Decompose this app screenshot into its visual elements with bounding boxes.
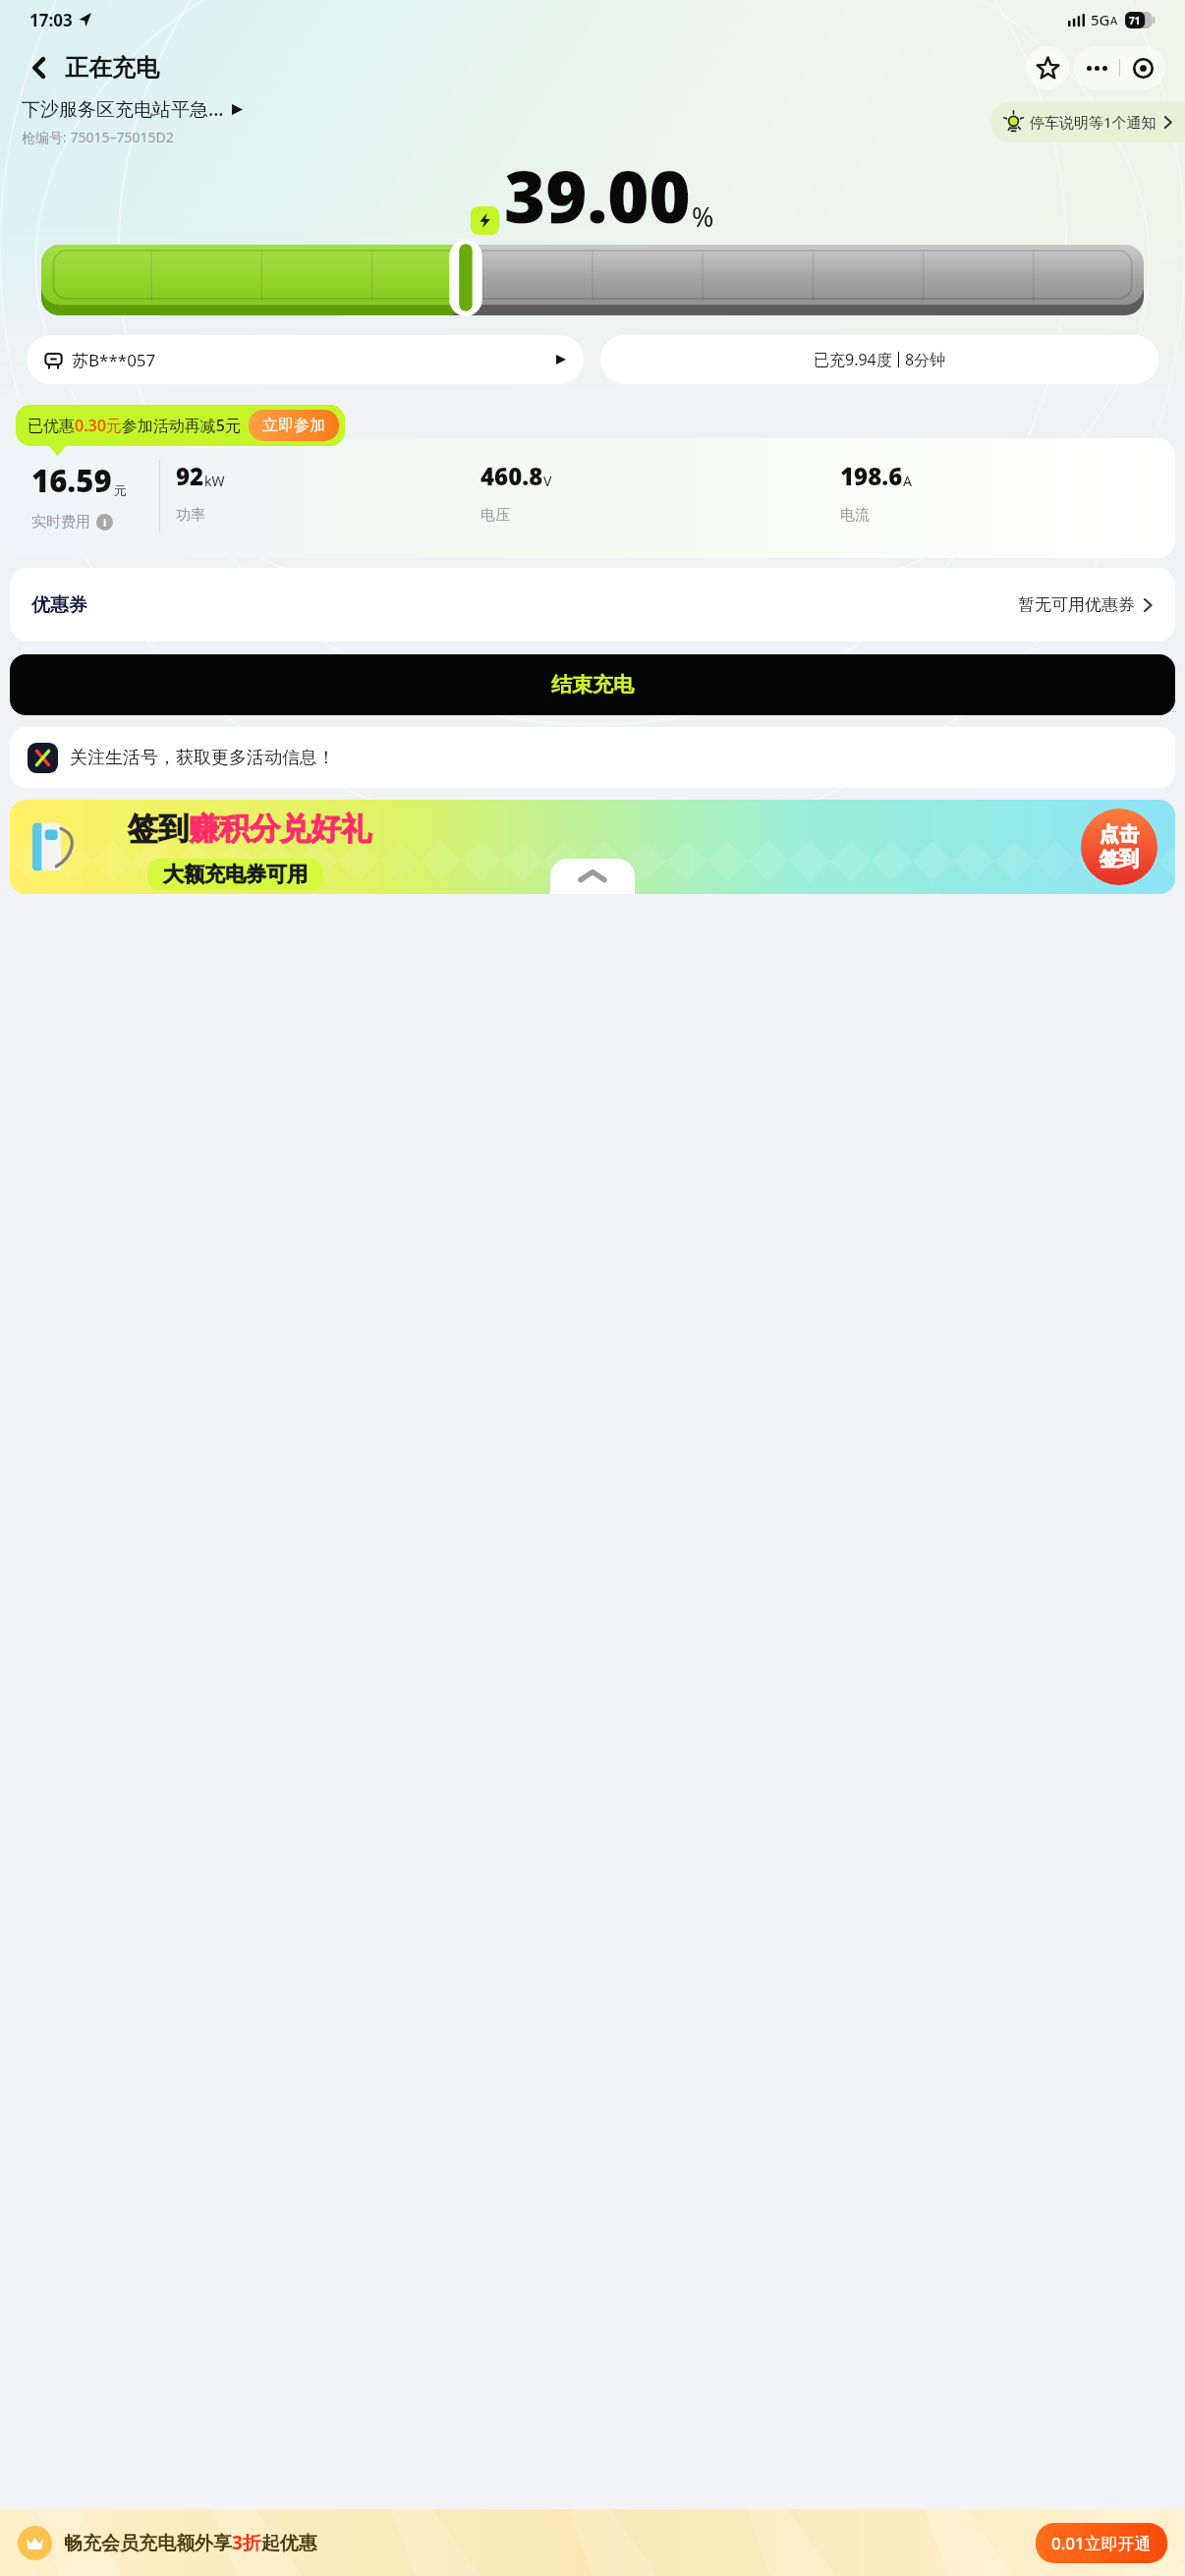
staticText: 签到: [128, 810, 189, 848]
button[interactable]: Expand: [550, 859, 635, 894]
staticText: 功率: [176, 506, 205, 525]
button[interactable]: 关注生活号，获取更多活动信息！: [10, 727, 1175, 788]
staticText: 暂无可用优惠券: [1018, 594, 1135, 615]
staticText: 198.6: [840, 460, 903, 492]
staticText: 关注生活号，获取更多活动信息！: [70, 747, 335, 769]
staticText: 已充9.94度: [814, 349, 892, 370]
staticText: 苏B***057: [72, 349, 156, 371]
staticText: 优惠券: [31, 593, 87, 617]
staticText: 枪编号: 75015–75015D2: [22, 128, 174, 146]
staticText: 正在充电: [65, 53, 159, 83]
staticText: kW: [204, 472, 225, 490]
staticText: 0.01立即开通: [1051, 2532, 1152, 2554]
button[interactable]: 点击: [1081, 809, 1157, 885]
button[interactable]: 已优惠0.30元参加活动再减5元: [16, 405, 345, 446]
button[interactable]: Fee info: [96, 514, 113, 531]
staticText: 结束充电: [551, 672, 634, 698]
staticText: %: [692, 198, 714, 235]
button[interactable]: 立即参加: [249, 410, 339, 441]
staticText: A: [1110, 13, 1118, 28]
button[interactable]: 优惠券: [10, 568, 1175, 642]
staticText: 停车说明等1个通知: [1030, 112, 1157, 132]
staticText: V: [543, 472, 552, 490]
button[interactable]: 下沙服务区充电站平急...: [22, 96, 990, 146]
staticText: 71: [1129, 14, 1141, 28]
button[interactable]: Back: [20, 48, 59, 87]
staticText: 8分钟: [905, 349, 946, 370]
button[interactable]: 签到: [10, 800, 1175, 894]
staticText: i: [103, 515, 107, 530]
staticText: 460.8: [480, 460, 543, 492]
staticText: 元: [114, 482, 127, 498]
staticText: 立即参加: [262, 416, 325, 435]
button[interactable]: More options: [1074, 46, 1119, 89]
staticText: 电流: [840, 506, 870, 525]
staticText: 大额充电券可用: [163, 862, 308, 887]
staticText: 17:03: [29, 9, 73, 31]
staticText: 赚积分兑好礼: [189, 810, 371, 848]
staticText: 点击: [1100, 822, 1139, 847]
staticText: 16.59: [31, 460, 112, 501]
button[interactable]: 苏B***057: [27, 335, 584, 384]
button[interactable]: 已充9.94度: [600, 335, 1158, 384]
staticText: 签到: [1100, 847, 1139, 871]
staticText: 电压: [480, 506, 510, 525]
staticText: 5G: [1091, 10, 1110, 29]
button[interactable]: 0.01立即开通: [1036, 2523, 1167, 2563]
staticText: 92: [176, 460, 204, 492]
staticText: 已优惠0.30元参加活动再减5元: [28, 415, 241, 436]
staticText: 实时费用: [31, 513, 90, 532]
button[interactable]: 结束充电: [10, 654, 1175, 715]
staticText: A: [903, 472, 912, 490]
staticText: 下沙服务区充电站平急...: [22, 96, 224, 122]
button[interactable]: 停车说明等1个通知: [990, 101, 1185, 142]
staticText: 39.00: [504, 147, 691, 244]
button[interactable]: Close: [1120, 46, 1165, 89]
staticText: 畅充会员充电额外享3折起优惠: [64, 2530, 317, 2555]
button[interactable]: Favorite: [1026, 46, 1069, 89]
